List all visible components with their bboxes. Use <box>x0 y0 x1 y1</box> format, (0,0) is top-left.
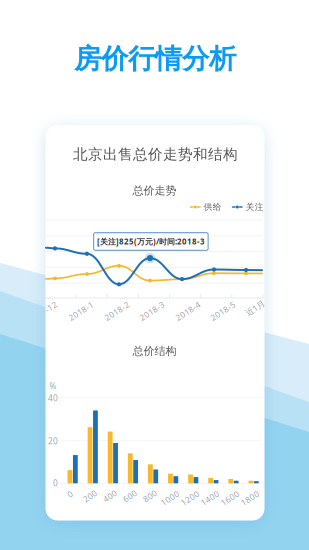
staticText: 总价结构 <box>132 344 176 358</box>
staticText: 2018-1 <box>67 305 95 317</box>
staticText: 总价走势 <box>132 183 176 197</box>
staticText: 40 <box>48 392 58 404</box>
staticText: 0 <box>67 488 72 500</box>
staticText: % <box>49 380 56 392</box>
staticText: 房价行情分析 <box>74 42 236 76</box>
staticText: 800 <box>142 490 157 502</box>
staticText: -12 <box>44 301 57 313</box>
staticText: 1800 <box>240 492 260 504</box>
staticText: 1200 <box>180 492 200 504</box>
staticText: 600 <box>122 490 137 502</box>
staticText: 关注 <box>246 202 264 212</box>
staticText: 2018-4 <box>174 305 202 317</box>
staticText: 20 <box>48 435 58 447</box>
staticText: 0 <box>53 477 58 489</box>
staticText: 1400 <box>200 492 220 504</box>
staticText: 2018-2 <box>103 305 131 317</box>
staticText: 1600 <box>220 492 240 504</box>
staticText: 200 <box>82 490 97 502</box>
staticText: 2018-3 <box>138 305 166 317</box>
staticText: 1000 <box>160 492 180 504</box>
staticText: [关注]825(万元)/时间:2018-3 <box>97 236 205 247</box>
staticText: 供给 <box>204 202 222 212</box>
staticText: 400 <box>102 490 117 502</box>
staticText: 近1月 <box>244 302 265 314</box>
staticText: 2018-5 <box>209 305 237 317</box>
staticText: 北京出售总价走势和结构 <box>73 145 238 164</box>
